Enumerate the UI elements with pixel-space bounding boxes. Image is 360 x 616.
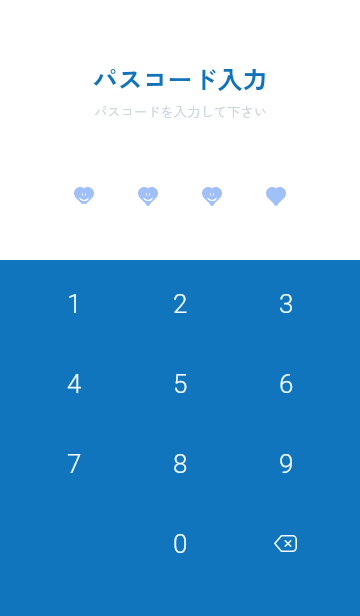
button[interactable]: Backspace: [233, 504, 339, 584]
staticText: 2: [173, 289, 188, 319]
staticText: パスコードを入力して下さい: [94, 102, 267, 121]
button[interactable]: 3: [233, 264, 339, 344]
button[interactable]: 2: [127, 264, 233, 344]
staticText: 1: [67, 289, 82, 319]
staticText: 9: [279, 449, 294, 479]
staticText: 5: [173, 369, 188, 399]
button[interactable]: 4: [21, 344, 127, 424]
button[interactable]: 7: [21, 424, 127, 504]
staticText: パスコード入力: [92, 60, 268, 94]
button[interactable]: 1: [21, 264, 127, 344]
staticText: 0: [173, 529, 188, 559]
staticText: 6: [279, 369, 294, 399]
staticText: 8: [173, 449, 188, 479]
staticText: 4: [67, 369, 82, 399]
button[interactable]: 5: [127, 344, 233, 424]
button[interactable]: 0: [127, 504, 233, 584]
staticText: 7: [67, 449, 82, 479]
staticText: 3: [279, 289, 294, 319]
button[interactable]: 9: [233, 424, 339, 504]
button[interactable]: 6: [233, 344, 339, 424]
button[interactable]: 8: [127, 424, 233, 504]
